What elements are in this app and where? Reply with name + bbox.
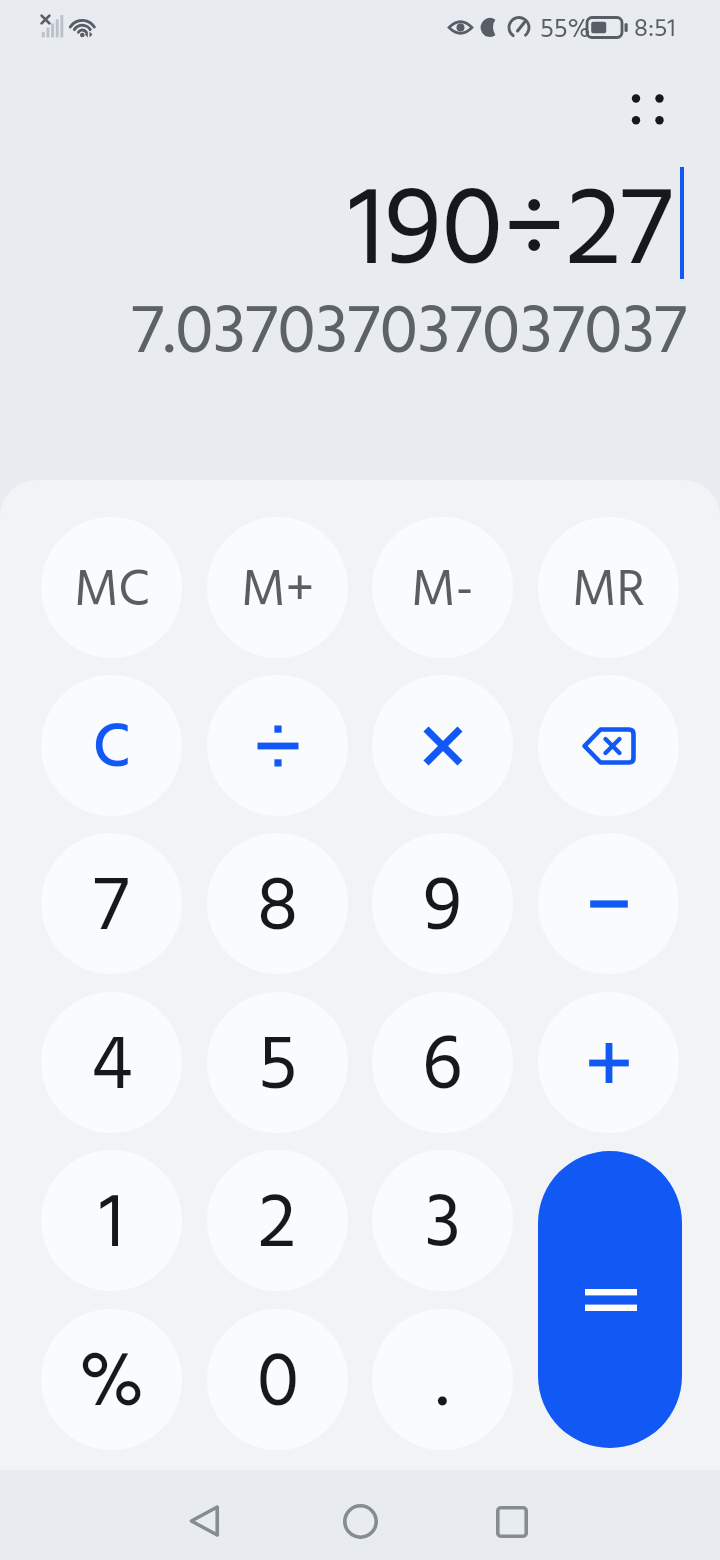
button[interactable]: Home	[330, 1491, 390, 1551]
staticText: MC	[74, 550, 150, 633]
staticText: 55%	[540, 9, 591, 52]
button[interactable]: Equals	[538, 1151, 682, 1448]
button[interactable]: 8	[207, 833, 348, 974]
button[interactable]: 5	[207, 992, 348, 1133]
button[interactable]: M-	[372, 517, 513, 658]
staticText: 3	[425, 1165, 461, 1288]
button[interactable]: Minus	[538, 833, 679, 974]
staticText: 4	[91, 1007, 133, 1130]
staticText: %	[79, 1324, 145, 1447]
button[interactable]: Plus	[538, 992, 679, 1133]
button[interactable]: .	[372, 1309, 513, 1450]
button[interactable]: 1	[41, 1150, 182, 1291]
button[interactable]: %	[41, 1309, 182, 1450]
button[interactable]: 2	[207, 1150, 348, 1291]
staticText: 7.037037037037037	[132, 278, 687, 390]
staticText: .	[436, 1324, 449, 1447]
button[interactable]: 9	[372, 833, 513, 974]
button[interactable]: C	[41, 675, 182, 816]
staticText: 6	[422, 1007, 463, 1130]
button[interactable]: M+	[207, 517, 348, 658]
button[interactable]: 4	[41, 992, 182, 1133]
staticText: 9	[423, 848, 462, 971]
staticText: 8	[257, 848, 299, 971]
staticText: MR	[572, 550, 646, 633]
button[interactable]: MC	[41, 517, 182, 658]
staticText: 8:51	[634, 9, 676, 51]
button[interactable]: MR	[538, 517, 679, 658]
staticText: 7	[94, 848, 129, 971]
staticText: 2	[258, 1165, 297, 1288]
button[interactable]: Divide	[207, 675, 348, 816]
button[interactable]: 6	[372, 992, 513, 1133]
staticText: 1	[99, 1165, 124, 1288]
staticText: 5	[258, 1007, 298, 1130]
button[interactable]: More options	[612, 75, 684, 147]
button[interactable]: Multiply	[372, 675, 513, 816]
staticText: C	[93, 701, 131, 800]
staticText: M-	[411, 550, 474, 633]
button[interactable]: 0	[207, 1309, 348, 1450]
staticText: 190÷27	[348, 144, 673, 325]
staticText: 0	[257, 1324, 299, 1447]
button[interactable]: Backspace	[538, 675, 679, 816]
staticText: M+	[241, 550, 315, 633]
button[interactable]: Recent apps	[482, 1492, 542, 1552]
button[interactable]: 3	[372, 1150, 513, 1291]
button[interactable]: 7	[41, 833, 182, 974]
button[interactable]: Back	[175, 1491, 235, 1551]
